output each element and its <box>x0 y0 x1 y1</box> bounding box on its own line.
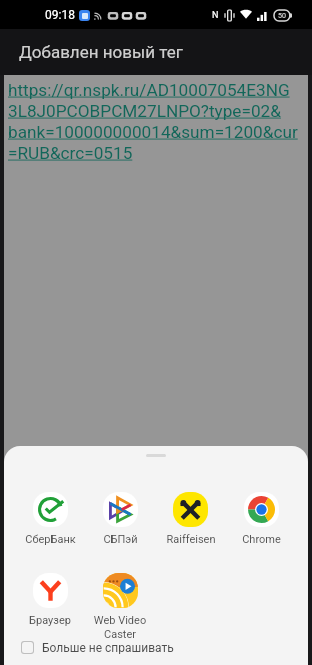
staticText: СБПэй <box>103 533 138 546</box>
button[interactable]: СберБанк <box>15 492 85 546</box>
staticText: Больше не спрашивать <box>42 641 174 654</box>
staticText: Web Video Caster <box>85 614 155 641</box>
staticText: Браузер <box>29 614 71 627</box>
staticText: Raiffeisen <box>166 533 216 546</box>
button[interactable]: Chrome <box>226 492 297 546</box>
staticText: СберБанк <box>25 533 76 546</box>
staticText: =RUB&crc=0515 <box>8 143 133 163</box>
staticText: 09:18 <box>45 8 75 22</box>
button[interactable]: Raiffeisen <box>155 492 226 546</box>
staticText: Добавлен новый тег <box>19 42 183 62</box>
button[interactable]: Браузер <box>15 573 85 627</box>
staticText: Chrome <box>242 533 281 546</box>
button[interactable]: Web Video Caster <box>85 573 155 641</box>
button[interactable]: СБПэй <box>85 492 155 546</box>
button[interactable]: Больше не спрашивать <box>4 641 308 665</box>
staticText: N <box>212 10 219 21</box>
staticText: 3L8J0PCOBPCM27LNPO?type=02& <box>8 101 281 121</box>
staticText: 50 <box>278 12 286 20</box>
staticText: https://qr.nspk.ru/AD10007054E3NG <box>8 80 290 100</box>
staticText: bank=100000000014&sum=1200&cur <box>8 122 298 142</box>
